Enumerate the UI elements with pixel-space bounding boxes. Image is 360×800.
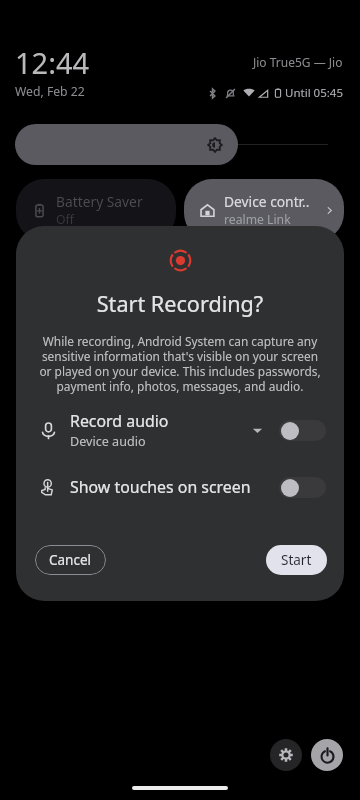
button[interactable]: Start <box>266 545 327 575</box>
button[interactable]: Cancel <box>35 545 106 575</box>
button[interactable]: Power <box>311 739 343 771</box>
button[interactable]: Record audio <box>16 408 344 452</box>
staticText: Until 05:45 <box>285 85 343 101</box>
staticText: Device audio <box>70 433 146 450</box>
button[interactable]: Battery Saver <box>16 179 176 241</box>
button[interactable]: Toggle <box>279 477 326 498</box>
staticText: Start <box>281 551 312 569</box>
staticText: Start Recording? <box>16 289 344 318</box>
staticText: Wed, Feb 22 <box>15 83 85 100</box>
staticText: Battery Saver <box>56 192 143 211</box>
staticText: 12:44 <box>15 43 90 82</box>
button[interactable]: Toggle <box>279 420 326 441</box>
staticText: While recording, Android System can capt… <box>39 333 321 394</box>
button[interactable]: Show touches on screen <box>16 468 344 506</box>
staticText: realme Link <box>224 211 291 228</box>
staticText: Show touches on screen <box>70 476 279 498</box>
staticText: Off <box>56 211 74 228</box>
button[interactable]: Device contr.. <box>184 179 344 241</box>
staticText: Jio True5G — Jio <box>253 54 343 70</box>
button[interactable]: Settings <box>270 739 302 771</box>
staticText: Record audio <box>70 410 169 432</box>
button[interactable]: Brightness <box>15 124 238 165</box>
staticText: Device contr.. <box>224 192 310 211</box>
staticText: Cancel <box>49 551 92 569</box>
